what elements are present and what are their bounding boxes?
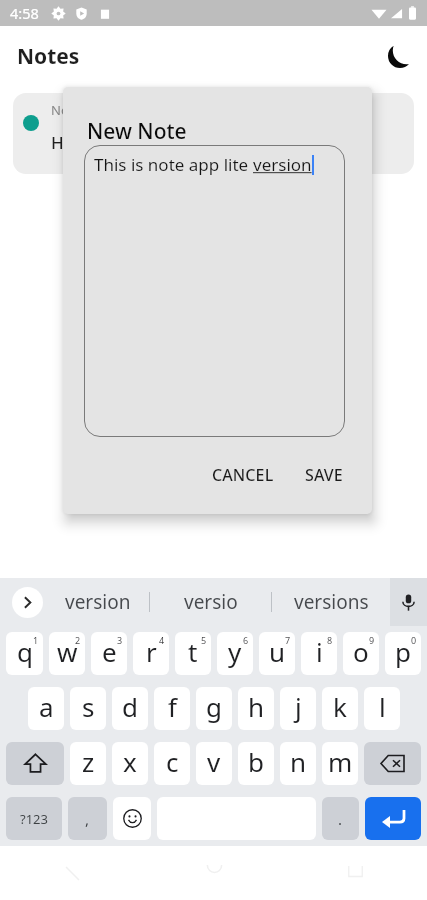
staticText: n bbox=[290, 744, 307, 779]
staticText: 8 bbox=[327, 634, 333, 646]
button[interactable]: v bbox=[196, 742, 232, 785]
button[interactable]: y bbox=[217, 632, 253, 675]
staticText: . bbox=[338, 809, 343, 829]
button[interactable]: d bbox=[112, 687, 148, 730]
staticText: o bbox=[353, 634, 369, 669]
button[interactable]: l bbox=[364, 687, 400, 730]
button[interactable]: versions bbox=[272, 578, 390, 626]
staticText: f bbox=[168, 689, 177, 724]
staticText: , bbox=[85, 809, 90, 829]
button[interactable]: u bbox=[259, 632, 295, 675]
staticText: k bbox=[333, 689, 347, 724]
staticText: i bbox=[316, 634, 323, 669]
staticText: 4:58 bbox=[10, 3, 39, 23]
staticText: z bbox=[82, 744, 95, 779]
button[interactable]: i bbox=[301, 632, 337, 675]
button[interactable]: k bbox=[322, 687, 358, 730]
staticText: 7 bbox=[285, 634, 291, 646]
button[interactable]: j bbox=[280, 687, 316, 730]
staticText: b bbox=[248, 744, 264, 779]
staticText: Note title bbox=[51, 101, 108, 119]
staticText: u bbox=[269, 634, 286, 669]
staticText: q bbox=[17, 634, 33, 669]
staticText: l bbox=[379, 689, 386, 724]
button[interactable]: x bbox=[112, 742, 148, 785]
button[interactable]: q bbox=[6, 632, 43, 675]
staticText: s bbox=[82, 689, 95, 724]
staticText: x bbox=[123, 744, 137, 779]
button[interactable]: Toggle dark mode bbox=[378, 34, 422, 78]
button[interactable]: Voice input bbox=[390, 578, 427, 626]
button[interactable]: Backspace bbox=[364, 742, 421, 785]
button[interactable]: c bbox=[154, 742, 190, 785]
staticText: Holiday plan bbox=[51, 131, 153, 154]
staticText: d bbox=[122, 689, 138, 724]
staticText: g bbox=[206, 689, 222, 724]
staticText: m bbox=[328, 744, 353, 779]
staticText: 0 bbox=[411, 634, 417, 646]
button[interactable]: SAVE bbox=[297, 458, 351, 492]
staticText: p bbox=[395, 634, 411, 669]
button[interactable]: w bbox=[49, 632, 85, 675]
button[interactable]: e bbox=[91, 632, 127, 675]
staticText: 2 bbox=[75, 634, 81, 646]
staticText: 9 bbox=[369, 634, 375, 646]
staticText: j bbox=[295, 689, 302, 724]
button[interactable]: s bbox=[70, 687, 106, 730]
staticText: 3 bbox=[117, 634, 123, 646]
button[interactable]: o bbox=[343, 632, 379, 675]
staticText: 4 bbox=[159, 634, 165, 646]
staticText: versio bbox=[184, 589, 238, 615]
button[interactable]: Note title bbox=[13, 93, 414, 174]
button[interactable]: Shift bbox=[6, 742, 64, 785]
button[interactable]: a bbox=[28, 687, 64, 730]
button[interactable]: n bbox=[280, 742, 316, 785]
button[interactable]: Enter bbox=[365, 797, 421, 840]
staticText: e bbox=[102, 634, 117, 669]
staticText: t bbox=[188, 634, 198, 669]
staticText: ?123 bbox=[20, 810, 48, 828]
staticText: v bbox=[207, 744, 221, 779]
button[interactable]: version bbox=[45, 578, 150, 626]
staticText: Notes bbox=[17, 42, 80, 71]
staticText: New Note bbox=[87, 117, 187, 146]
button[interactable]: f bbox=[154, 687, 190, 730]
staticText: version bbox=[253, 153, 312, 176]
button[interactable]: m bbox=[322, 742, 358, 785]
button[interactable]: r bbox=[133, 632, 169, 675]
staticText: w bbox=[57, 634, 78, 669]
button[interactable]: t bbox=[175, 632, 211, 675]
button[interactable]: Emoji bbox=[113, 797, 151, 840]
button[interactable]: p bbox=[385, 632, 421, 675]
button[interactable]: , bbox=[68, 797, 107, 840]
staticText: versions bbox=[294, 589, 369, 615]
staticText: CANCEL bbox=[212, 464, 274, 486]
button[interactable]: z bbox=[70, 742, 106, 785]
staticText: 5 bbox=[201, 634, 207, 646]
button[interactable]: g bbox=[196, 687, 232, 730]
staticText: 6 bbox=[243, 634, 249, 646]
staticText: This is note app lite bbox=[94, 153, 253, 176]
staticText: 1 bbox=[33, 634, 39, 646]
staticText: a bbox=[39, 689, 54, 724]
staticText: version bbox=[65, 589, 131, 615]
button[interactable]: Expand toolbar bbox=[12, 587, 43, 618]
staticText: y bbox=[228, 634, 242, 669]
button[interactable]: h bbox=[238, 687, 274, 730]
staticText: SAVE bbox=[305, 464, 343, 486]
button[interactable]: b bbox=[238, 742, 274, 785]
button[interactable]: versio bbox=[150, 578, 272, 626]
button[interactable]: ?123 bbox=[6, 797, 62, 840]
staticText: c bbox=[166, 744, 179, 779]
button[interactable]: . bbox=[322, 797, 359, 840]
staticText: h bbox=[248, 689, 265, 724]
staticText: r bbox=[146, 634, 157, 669]
button[interactable]: CANCEL bbox=[204, 458, 282, 492]
